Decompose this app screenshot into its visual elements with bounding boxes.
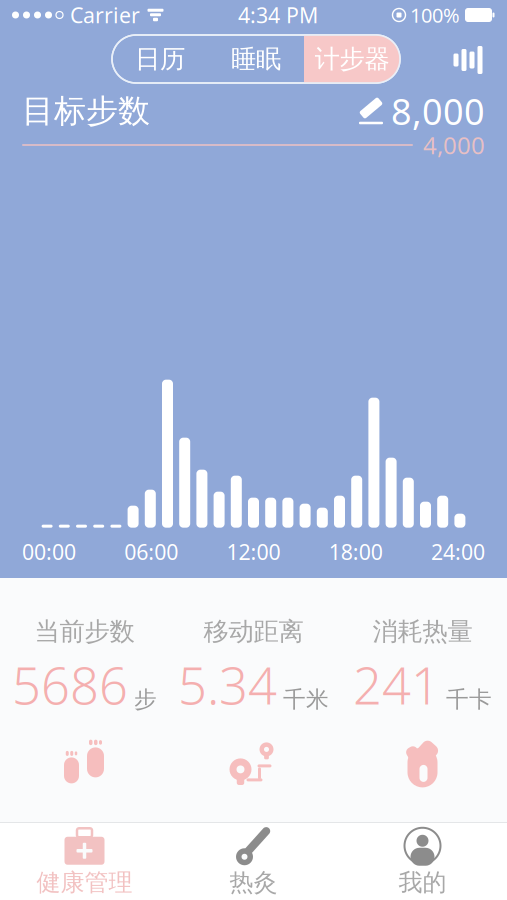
button[interactable]: 热灸: [169, 822, 338, 900]
staticText: 移动距离: [203, 616, 303, 647]
staticText: 千米: [283, 686, 329, 713]
staticText: 睡眠: [231, 43, 281, 74]
staticText: 日历: [135, 43, 185, 74]
button[interactable]: 睡眠: [208, 35, 304, 83]
staticText: 4,000: [423, 129, 485, 161]
staticText: 目标步数: [22, 91, 150, 131]
staticText: 4:34 PM: [238, 1, 318, 29]
button[interactable]: 我的: [338, 822, 507, 900]
staticText: 12:00: [226, 538, 280, 566]
staticText: 8,000: [391, 87, 485, 135]
staticText: 当前步数: [34, 616, 134, 647]
button[interactable]: 编辑目标步数: [355, 87, 485, 135]
staticText: 步: [134, 686, 157, 713]
staticText: 00:00: [22, 538, 76, 566]
staticText: 热灸: [229, 868, 277, 897]
staticText: 消耗热量: [372, 616, 472, 647]
staticText: 241: [353, 651, 440, 718]
staticText: 千卡: [446, 686, 492, 713]
staticText: 健康管理: [36, 868, 132, 897]
staticText: 18:00: [329, 538, 383, 566]
staticText: 5.34: [178, 651, 277, 718]
button[interactable]: 计步器: [304, 35, 400, 83]
staticText: 我的: [398, 868, 446, 897]
staticText: 100%: [410, 2, 460, 28]
staticText: Carrier: [70, 1, 140, 29]
button[interactable]: 健康管理: [0, 822, 169, 900]
staticText: 24:00: [431, 538, 485, 566]
staticText: 5686: [12, 651, 128, 718]
staticText: 计步器: [314, 43, 389, 74]
staticText: 06:00: [124, 538, 178, 566]
button[interactable]: 日历: [112, 35, 208, 83]
button[interactable]: 统计图表: [451, 44, 485, 74]
